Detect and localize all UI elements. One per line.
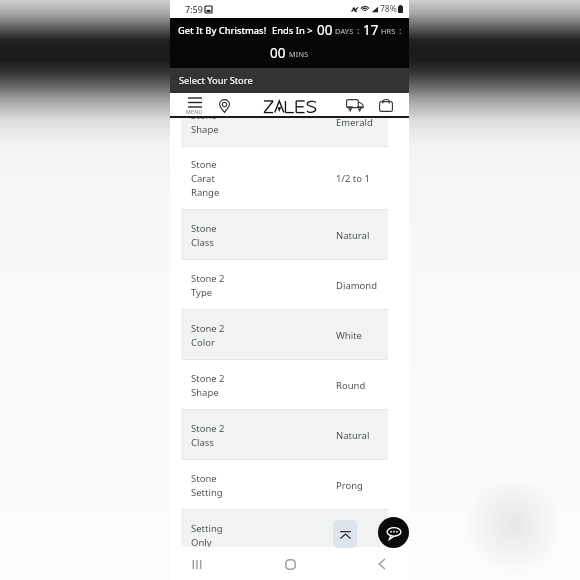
staticText: 7:59 [185,3,203,15]
staticText: 17 [363,21,379,39]
button[interactable]: Scroll to top [333,520,357,548]
button[interactable]: Recents [182,549,212,579]
staticText: Prong [336,479,363,492]
staticText: Diamond [336,279,378,292]
staticText: 00 [270,44,286,62]
button[interactable]: Stone 2 Class [181,410,388,460]
button[interactable]: Chat [378,517,409,548]
button[interactable]: Stone Setting [181,460,388,510]
button[interactable]: Stone 2 Color [181,310,388,360]
staticText: White [336,329,362,342]
button[interactable]: Menu [186,97,203,115]
staticText: Natural [336,429,370,442]
staticText: MINS [289,49,309,59]
staticText: 00 [317,21,333,39]
staticText: Get It By Christmas! [178,24,267,37]
staticText: 1/2 to 1 [336,172,370,185]
staticText: Stone Shape [191,118,219,136]
staticText: Select Your Store [179,74,253,87]
button[interactable]: Store locator [219,99,230,113]
button[interactable]: Setting Only [181,510,388,547]
staticText: : [399,24,402,36]
staticText: Setting Only [191,522,223,547]
staticText: Stone 2 Shape [191,372,225,399]
staticText: Round [336,379,366,392]
staticText: Stone Setting [191,472,223,499]
staticText: 78% [380,3,397,15]
staticText: DAYS [335,26,354,36]
button[interactable]: Select Your Store [170,68,409,93]
staticText: : [357,24,360,36]
staticText: Stone 2 Type [191,272,225,299]
button[interactable]: Stone 2 Type [181,260,388,310]
button[interactable]: Get It By Christmas! [170,18,409,68]
staticText: HRS [381,26,396,36]
button[interactable]: Shipping [346,98,364,111]
button[interactable]: Stone Carat Range [181,147,388,210]
staticText: Natural [336,229,370,242]
button[interactable]: Back [367,549,397,579]
button[interactable]: Stone 2 Shape [181,360,388,410]
button[interactable]: Home [275,549,305,579]
staticText: Emerald [336,118,373,129]
button[interactable]: Stone Class [181,210,388,260]
staticText: Stone 2 Class [191,422,225,449]
button[interactable]: Stone Shape [181,118,388,147]
button[interactable]: Shopping bag [379,98,393,112]
staticText: MENU [186,108,203,115]
staticText: Stone Class [191,222,217,249]
staticText: Stone 2 Color [191,322,225,349]
staticText: Stone Carat Range [191,158,220,199]
staticText: Ends In > [272,24,313,37]
